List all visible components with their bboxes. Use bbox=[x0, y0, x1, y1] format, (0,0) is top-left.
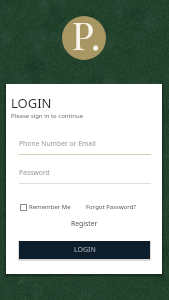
staticText: LOGIN bbox=[74, 245, 96, 255]
staticText: P. bbox=[72, 16, 101, 54]
button[interactable]: Register bbox=[71, 219, 98, 228]
button[interactable]: Forgot Password? bbox=[86, 203, 136, 211]
staticText: Phone Number or Email bbox=[19, 139, 96, 148]
staticText: Remember Me bbox=[29, 203, 71, 211]
staticText: Password bbox=[19, 168, 50, 177]
other: Logo bbox=[62, 16, 106, 60]
staticText: Please sign in to continue bbox=[11, 112, 84, 120]
button[interactable]: LOGIN bbox=[19, 241, 150, 259]
staticText: LOGIN bbox=[11, 94, 52, 112]
button[interactable]: Remember Me bbox=[20, 203, 71, 211]
